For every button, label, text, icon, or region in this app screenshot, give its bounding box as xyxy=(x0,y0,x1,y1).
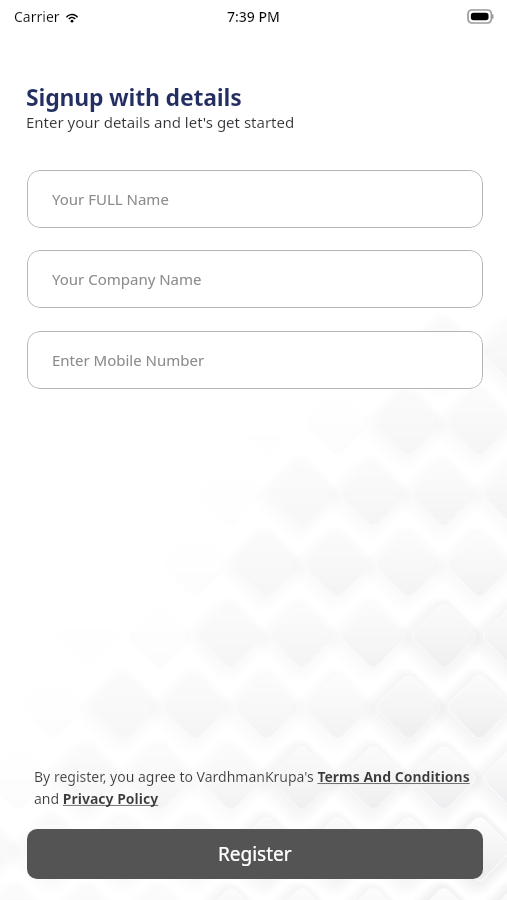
staticText: Your FULL Name xyxy=(52,189,169,209)
button[interactable]: Enter Mobile Number xyxy=(27,331,483,389)
staticText: Register xyxy=(218,841,292,867)
staticText: Enter Mobile Number xyxy=(52,350,205,370)
button[interactable]: Register xyxy=(27,829,483,879)
staticText: Carrier xyxy=(14,7,60,26)
staticText: Enter your details and let's get started xyxy=(26,112,295,132)
button[interactable]: Your FULL Name xyxy=(27,170,483,228)
staticText: Signup with details xyxy=(26,81,242,112)
staticText: By register, you agree to VardhmanKrupa'… xyxy=(34,767,472,808)
button[interactable]: By register, you agree to VardhmanKrupa'… xyxy=(34,767,472,808)
other: Battery full xyxy=(468,10,494,23)
staticText: 7:39 PM xyxy=(227,7,280,26)
other: Wi-Fi xyxy=(65,10,79,24)
button[interactable]: Your Company Name xyxy=(27,250,483,308)
staticText: Your Company Name xyxy=(52,269,202,289)
